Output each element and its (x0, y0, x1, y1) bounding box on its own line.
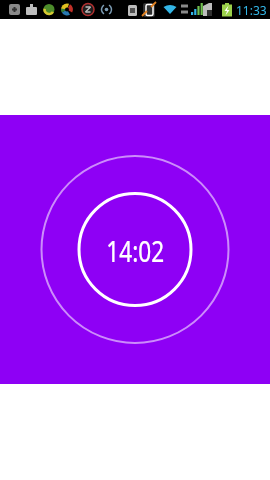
staticText: 14:02 (106, 231, 165, 270)
button[interactable]: 14:02 (0, 115, 270, 384)
staticText: 11:33 (236, 2, 267, 18)
